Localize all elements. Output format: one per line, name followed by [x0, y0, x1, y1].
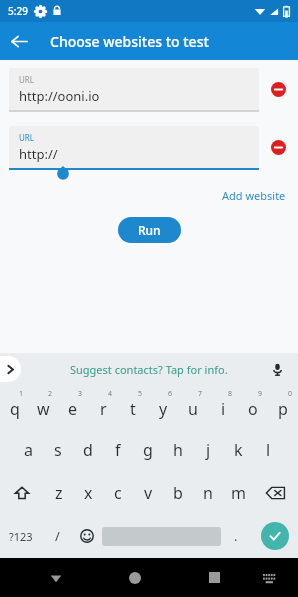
- staticText: m: [231, 482, 246, 504]
- button[interactable]: URL: [9, 68, 259, 112]
- button[interactable]: Home: [115, 558, 155, 597]
- button[interactable]: Back: [0, 22, 38, 60]
- button[interactable]: d: [73, 428, 103, 471]
- button[interactable]: 2: [29, 385, 58, 428]
- staticText: 1: [19, 389, 24, 399]
- staticText: l: [266, 439, 271, 461]
- button[interactable]: l: [253, 428, 283, 471]
- button[interactable]: n: [193, 471, 223, 514]
- staticText: p: [278, 398, 288, 420]
- staticText: z: [55, 482, 63, 504]
- staticText: j: [206, 439, 211, 461]
- button[interactable]: 6: [148, 385, 178, 428]
- staticText: /: [55, 527, 60, 545]
- button[interactable]: 1: [0, 385, 29, 428]
- button[interactable]: 3: [58, 385, 88, 428]
- staticText: a: [24, 439, 33, 461]
- staticText: Add website: [222, 188, 286, 203]
- button[interactable]: h: [163, 428, 193, 471]
- staticText: c: [114, 482, 122, 504]
- staticText: 5: [138, 389, 143, 399]
- staticText: 5:29: [8, 4, 28, 18]
- button[interactable]: ?123: [0, 514, 42, 558]
- staticText: .: [234, 527, 238, 545]
- button[interactable]: c: [103, 471, 133, 514]
- button[interactable]: Emoji: [72, 514, 102, 558]
- staticText: Run: [138, 222, 161, 238]
- staticText: q: [10, 398, 20, 420]
- staticText: Suggest contacts? Tap for info.: [70, 362, 228, 377]
- staticText: http://ooni.io: [19, 87, 100, 105]
- button[interactable]: v: [133, 471, 163, 514]
- staticText: w: [37, 398, 50, 420]
- button[interactable]: z: [44, 471, 73, 514]
- button[interactable]: Run: [118, 217, 181, 243]
- button[interactable]: 5: [118, 385, 148, 428]
- button[interactable]: Enter: [251, 514, 298, 558]
- staticText: e: [68, 398, 78, 420]
- button[interactable]: /: [42, 514, 72, 558]
- button[interactable]: 4: [88, 385, 118, 428]
- button[interactable]: 8: [208, 385, 238, 428]
- button[interactable]: 9: [238, 385, 268, 428]
- staticText: g: [143, 439, 153, 461]
- button[interactable]: b: [163, 471, 193, 514]
- button[interactable]: 7: [178, 385, 208, 428]
- staticText: ?123: [9, 529, 33, 544]
- staticText: t: [130, 398, 136, 420]
- staticText: URL: [19, 132, 35, 143]
- button[interactable]: s: [43, 428, 73, 471]
- staticText: 2: [48, 389, 53, 399]
- staticText: x: [84, 482, 93, 504]
- button[interactable]: Backspace: [253, 471, 298, 514]
- button[interactable]: m: [223, 471, 253, 514]
- staticText: r: [100, 398, 107, 420]
- staticText: 8: [228, 389, 233, 399]
- button[interactable]: a: [14, 428, 43, 471]
- button[interactable]: Add website: [210, 184, 298, 207]
- staticText: 0: [288, 389, 293, 399]
- staticText: h: [173, 439, 183, 461]
- button[interactable]: k: [223, 428, 253, 471]
- button[interactable]: URL: [9, 126, 259, 170]
- staticText: d: [83, 439, 93, 461]
- staticText: n: [203, 482, 213, 504]
- button[interactable]: Back: [36, 558, 76, 597]
- staticText: http://: [19, 145, 58, 163]
- button[interactable]: f: [103, 428, 133, 471]
- button[interactable]: x: [73, 471, 103, 514]
- button[interactable]: Shift: [0, 471, 44, 514]
- button[interactable]: Space: [102, 514, 221, 558]
- staticText: b: [173, 482, 183, 504]
- staticText: 6: [168, 389, 173, 399]
- button[interactable]: Remove website: [267, 78, 289, 100]
- staticText: f: [115, 439, 121, 461]
- button[interactable]: Remove website: [267, 136, 289, 158]
- staticText: v: [144, 482, 153, 504]
- staticText: Choose websites to test: [50, 32, 209, 51]
- staticText: k: [234, 439, 243, 461]
- button[interactable]: .: [221, 514, 251, 558]
- staticText: 4: [108, 389, 113, 399]
- staticText: o: [248, 398, 258, 420]
- staticText: 3: [78, 389, 83, 399]
- button[interactable]: Voice input: [265, 357, 289, 381]
- staticText: 9: [258, 389, 263, 399]
- button[interactable]: Suggest contacts? Tap for info.: [66, 358, 232, 381]
- staticText: URL: [19, 74, 35, 85]
- button[interactable]: Recents: [194, 558, 234, 597]
- staticText: y: [159, 398, 168, 420]
- button[interactable]: 0: [268, 385, 298, 428]
- staticText: s: [54, 439, 62, 461]
- button[interactable]: Expand suggestions: [0, 356, 21, 382]
- staticText: i: [221, 398, 226, 420]
- button[interactable]: Switch keyboard: [252, 561, 286, 595]
- staticText: 7: [198, 389, 203, 399]
- button[interactable]: g: [133, 428, 163, 471]
- staticText: u: [188, 398, 198, 420]
- button[interactable]: j: [193, 428, 223, 471]
